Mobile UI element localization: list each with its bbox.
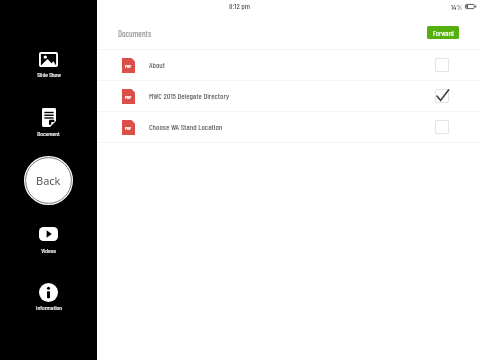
staticText: 8:12 pm <box>229 1 251 11</box>
staticText: Information <box>36 303 62 311</box>
staticText: Videos <box>41 246 56 254</box>
button[interactable]: Selected <box>435 89 449 103</box>
button[interactable]: PDF <box>97 112 480 143</box>
button[interactable]: Select <box>435 120 449 134</box>
staticText: PDF <box>125 94 132 99</box>
staticText: Documents <box>118 28 152 38</box>
staticText: PDF <box>125 125 132 130</box>
button[interactable]: Document <box>0 104 97 141</box>
staticText: Document <box>37 129 60 137</box>
button[interactable]: Back <box>24 156 73 205</box>
button[interactable]: Slide Show <box>0 48 97 82</box>
button[interactable]: Videos <box>0 223 97 258</box>
staticText: PDF <box>125 63 132 68</box>
button[interactable]: PDF <box>97 81 480 112</box>
staticText: MWC 2015 Delegate Directory <box>149 91 230 101</box>
button[interactable]: Select <box>435 58 449 72</box>
staticText: Slide Show <box>37 70 61 78</box>
staticText: Choose WA Stand Location <box>149 122 223 132</box>
button[interactable]: PDF <box>97 50 480 81</box>
staticText: About <box>149 60 165 70</box>
staticText: Back <box>36 173 61 188</box>
staticText: Forward <box>433 28 454 37</box>
button[interactable]: Information <box>0 279 97 315</box>
staticText: 14% <box>451 2 463 11</box>
button[interactable]: Forward <box>427 26 459 39</box>
